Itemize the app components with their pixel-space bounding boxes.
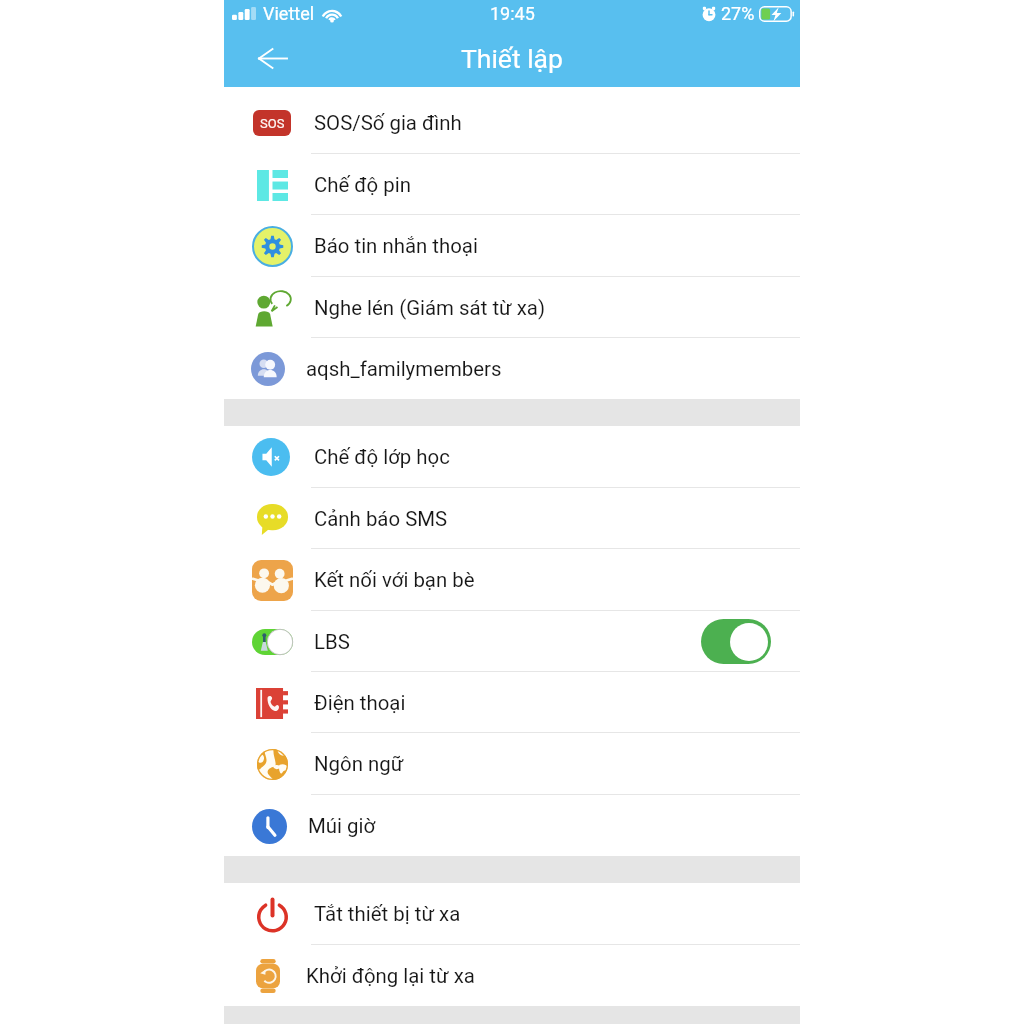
staticText: Báo tin nhắn thoại (314, 234, 478, 258)
button[interactable]: Khởi động lại từ xa (224, 945, 800, 1006)
staticText: SOS/Số gia đình (314, 111, 462, 135)
button[interactable]: LBS (224, 611, 800, 672)
staticText: Thiết lập (461, 43, 563, 74)
button[interactable]: Ngôn ngữ (224, 733, 800, 794)
button[interactable]: Điện thoại (224, 672, 800, 733)
staticText: aqsh_familymembers (306, 357, 502, 381)
staticText: Cảnh báo SMS (314, 507, 448, 531)
button[interactable]: Cảnh báo SMS (224, 488, 800, 549)
button[interactable]: aqsh_familymembers (224, 338, 800, 399)
staticText: Múi giờ (308, 814, 376, 838)
button[interactable]: Chế độ pin (224, 154, 800, 215)
staticText: Điện thoại (314, 691, 406, 715)
staticText: Chế độ pin (314, 173, 411, 197)
staticText: Viettel (263, 3, 315, 24)
staticText: Tắt thiết bị từ xa (314, 902, 461, 926)
button[interactable]: SOS (224, 92, 800, 153)
button[interactable]: LBS toggle (701, 619, 771, 664)
staticText: Kết nối với bạn bè (314, 568, 475, 592)
button[interactable]: Kết nối với bạn bè (224, 549, 800, 610)
button[interactable]: Back (250, 36, 294, 80)
staticText: Nghe lén (Giám sát từ xa) (314, 296, 546, 320)
staticText: 27% (721, 3, 755, 24)
staticText: Ngôn ngữ (314, 752, 404, 776)
button[interactable]: Tắt thiết bị từ xa (224, 883, 800, 944)
button[interactable]: Múi giờ (224, 795, 800, 856)
staticText: Chế độ lớp học (314, 445, 450, 469)
button[interactable]: Nghe lén (Giám sát từ xa) (224, 277, 800, 338)
staticText: Khởi động lại từ xa (306, 964, 475, 988)
staticText: SOS (260, 116, 285, 131)
staticText: 19:45 (490, 3, 535, 24)
button[interactable]: Báo tin nhắn thoại (224, 215, 800, 276)
button[interactable]: Chế độ lớp học (224, 426, 800, 487)
staticText: LBS (314, 630, 350, 654)
